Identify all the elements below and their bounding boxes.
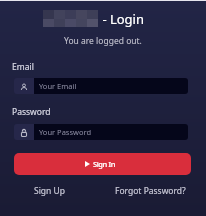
staticText: Your Email — [39, 81, 77, 91]
staticText: Sign In — [93, 159, 116, 169]
staticText: Email — [12, 61, 34, 73]
staticText: - Login — [99, 10, 145, 28]
button[interactable]: Your Password — [14, 124, 188, 140]
staticText: Your Password — [39, 127, 92, 137]
staticText: Forgot Password? — [115, 185, 186, 197]
staticText: Sign Up — [34, 185, 65, 197]
button[interactable]: Your Email — [14, 78, 188, 94]
staticText: You are logged out. — [64, 35, 142, 47]
button[interactable]: Forgot Password? — [115, 185, 186, 197]
button[interactable]: Sign In — [14, 153, 191, 175]
staticText: Password — [12, 106, 51, 118]
button[interactable]: Sign Up — [34, 185, 65, 197]
